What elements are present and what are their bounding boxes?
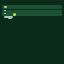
button[interactable] (2, 5, 62, 9)
button[interactable] (13, 13, 16, 16)
button[interactable] (2, 10, 62, 16)
